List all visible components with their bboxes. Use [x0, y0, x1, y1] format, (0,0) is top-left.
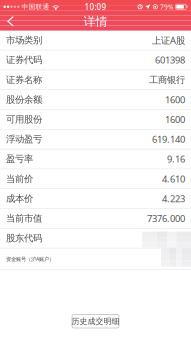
staticText: 证券名称 — [6, 74, 42, 86]
staticText: 4.610 — [162, 173, 185, 185]
staticText: 历史成交明细 — [71, 316, 119, 326]
staticText: 当前市值 — [6, 213, 42, 224]
staticText: 10:09 — [84, 1, 106, 12]
staticText: 市场类别 — [6, 34, 42, 46]
staticText: 上证A股 — [152, 34, 185, 46]
staticText: 1600 — [165, 93, 185, 106]
staticText: 股东代码 — [6, 232, 42, 244]
staticText: 中国联通 — [19, 3, 51, 11]
staticText: 可用股份 — [6, 114, 42, 125]
staticText: 盈亏率 — [6, 153, 33, 165]
staticText: 股份余额 — [6, 94, 42, 105]
staticText: 1600 — [165, 113, 185, 126]
staticText: 9.16 — [167, 153, 185, 165]
staticText: 详情 — [83, 14, 107, 29]
staticText: 619.140 — [152, 133, 185, 145]
staticText: 资金账号（沪A账户） — [6, 255, 54, 262]
staticText: 浮动盈亏 — [6, 133, 42, 145]
staticText: 证券代码 — [6, 54, 42, 66]
staticText: 成本价 — [6, 193, 33, 204]
staticText: 7376.000 — [147, 212, 185, 225]
staticText: 601398 — [155, 54, 185, 66]
staticText: 工商银行 — [149, 74, 185, 86]
staticText: 当前价 — [6, 173, 33, 185]
button[interactable]: Back — [0, 14, 22, 31]
button[interactable]: 历史成交明细 — [72, 314, 119, 328]
staticText: 79% — [160, 2, 174, 11]
staticText: 4.223 — [162, 192, 185, 205]
